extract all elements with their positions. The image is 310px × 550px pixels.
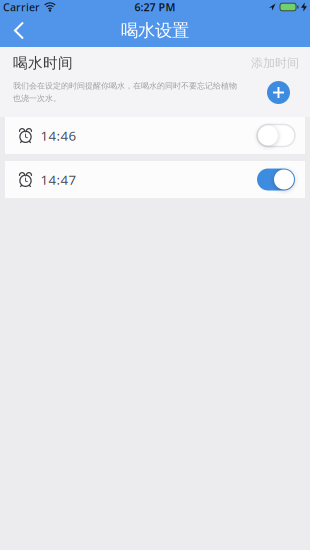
button[interactable]: 14:47 (5, 161, 305, 198)
button[interactable]: 14:46 (5, 117, 305, 154)
button[interactable]: Add time (267, 81, 290, 104)
staticText: 也浇一次水。 (13, 93, 61, 103)
staticText: 6:27 PM (134, 0, 175, 14)
button[interactable]: Reminder on (257, 168, 295, 190)
button[interactable]: Back (0, 14, 33, 47)
staticText: 添加时间 (251, 56, 299, 70)
button[interactable]: Reminder off (257, 124, 295, 146)
staticText: 喝水时间 (13, 54, 73, 72)
staticText: 喝水设置 (121, 20, 189, 41)
button[interactable]: 添加时间 (251, 56, 299, 70)
staticText: 14:47 (40, 171, 76, 188)
staticText: 14:46 (40, 127, 76, 144)
staticText: Carrier (3, 0, 40, 14)
staticText: 我们会在设定的时间提醒你喝水，在喝水的同时不要忘记给植物 (13, 81, 237, 91)
